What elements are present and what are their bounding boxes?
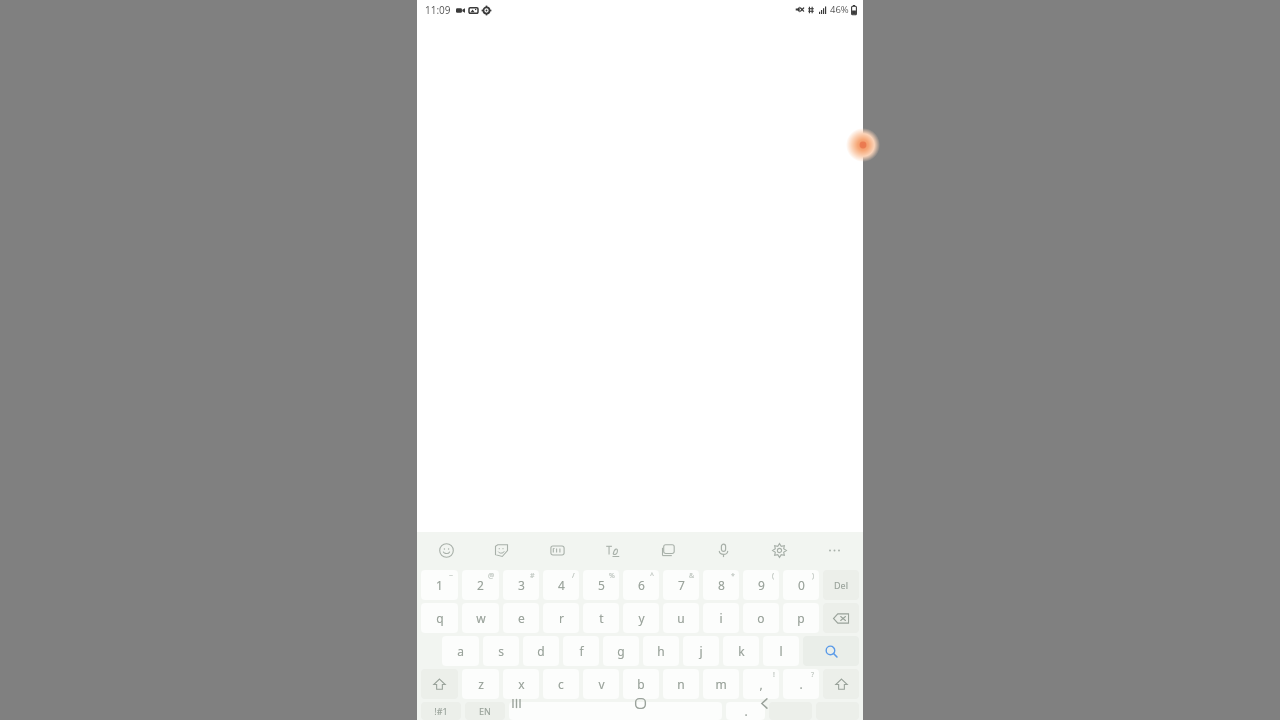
button[interactable]: 4 <box>543 570 579 600</box>
staticText: h <box>657 643 665 659</box>
button[interactable]: EN <box>465 702 505 720</box>
staticText: 46% <box>830 3 849 16</box>
staticText: !#1 <box>434 705 448 717</box>
staticText: . <box>799 676 803 692</box>
staticText: . <box>744 703 748 719</box>
staticText: 2 <box>477 577 484 593</box>
button[interactable]: Del <box>823 570 859 600</box>
staticText: # <box>530 571 535 581</box>
button[interactable]: 0 <box>783 570 819 600</box>
button[interactable]: f <box>563 636 599 666</box>
button[interactable]: p <box>783 603 819 633</box>
button[interactable]: x <box>503 669 539 699</box>
button[interactable]: Shift right <box>823 669 859 699</box>
button[interactable] <box>509 702 722 720</box>
button[interactable]: e <box>503 603 539 633</box>
button[interactable]: . <box>783 669 819 699</box>
staticText: p <box>797 610 805 626</box>
button[interactable]: y <box>623 603 659 633</box>
button[interactable]: d <box>523 636 559 666</box>
staticText: g <box>617 643 625 659</box>
staticText: & <box>689 571 695 581</box>
button[interactable]: g <box>603 636 639 666</box>
button[interactable]: o <box>743 603 779 633</box>
staticText: 4 <box>558 577 565 593</box>
button[interactable]: Clipboard <box>653 535 683 565</box>
staticText: b <box>637 676 645 692</box>
button[interactable]: , <box>743 669 779 699</box>
button[interactable]: 9 <box>743 570 779 600</box>
staticText: 8 <box>718 577 725 593</box>
staticText: r <box>559 610 564 626</box>
button[interactable]: Search <box>803 636 859 666</box>
staticText: 3 <box>518 577 525 593</box>
staticText: t <box>599 610 604 626</box>
staticText: x <box>518 676 525 692</box>
button[interactable]: 2 <box>462 570 499 600</box>
button[interactable]: l <box>763 636 799 666</box>
button[interactable]: Settings <box>764 535 794 565</box>
staticText: 7 <box>678 577 685 593</box>
button[interactable]: 5 <box>583 570 619 600</box>
button[interactable]: w <box>462 603 499 633</box>
staticText: e <box>518 610 525 626</box>
button[interactable]: j <box>683 636 719 666</box>
staticText: m <box>715 676 727 692</box>
button[interactable]: t <box>583 603 619 633</box>
staticText: d <box>537 643 545 659</box>
button[interactable]: a <box>442 636 479 666</box>
staticText: k <box>738 643 745 659</box>
staticText: 9 <box>758 577 765 593</box>
button[interactable]: Stickers <box>486 535 516 565</box>
button[interactable]: 7 <box>663 570 699 600</box>
button[interactable]: Floating bubble <box>846 128 880 162</box>
staticText: ( <box>772 571 775 581</box>
button[interactable]: Back <box>747 694 781 712</box>
button[interactable]: u <box>663 603 699 633</box>
button[interactable]: Home <box>623 694 657 712</box>
staticText: j <box>699 643 703 659</box>
button[interactable]: 6 <box>623 570 659 600</box>
staticText: ) <box>812 571 815 581</box>
button[interactable]: r <box>543 603 579 633</box>
button[interactable]: c <box>543 669 579 699</box>
button[interactable]: s <box>483 636 519 666</box>
button[interactable]: Emoji <box>431 535 461 565</box>
button[interactable]: z <box>462 669 499 699</box>
button[interactable]: v <box>583 669 619 699</box>
button[interactable]: 1 <box>421 570 458 600</box>
button[interactable]: i <box>703 603 739 633</box>
button[interactable]: More options <box>819 535 849 565</box>
staticText: y <box>638 610 645 626</box>
button[interactable]: Recents <box>499 694 533 712</box>
staticText: ! <box>773 670 775 680</box>
button[interactable]: Backspace <box>823 603 859 633</box>
button[interactable]: m <box>703 669 739 699</box>
button[interactable]: . <box>726 702 765 720</box>
button[interactable]: GIF <box>542 535 572 565</box>
button[interactable]: 3 <box>503 570 539 600</box>
staticText: 11:09 <box>425 3 451 17</box>
staticText: f <box>579 643 584 659</box>
button[interactable]: Handwriting <box>597 535 627 565</box>
button[interactable]: !#1 <box>421 702 461 720</box>
staticText: i <box>719 610 723 626</box>
button[interactable]: b <box>623 669 659 699</box>
button[interactable]: n <box>663 669 699 699</box>
staticText: * <box>731 571 735 581</box>
staticText: 0 <box>798 577 805 593</box>
button[interactable]: k <box>723 636 759 666</box>
staticText: s <box>498 643 504 659</box>
staticText: q <box>436 610 444 626</box>
button[interactable]: Shift <box>421 669 458 699</box>
staticText: w <box>476 610 486 626</box>
button[interactable]: Voice input <box>708 535 738 565</box>
staticText: n <box>677 676 685 692</box>
button[interactable]: q <box>421 603 458 633</box>
button[interactable]: 8 <box>703 570 739 600</box>
button[interactable]: h <box>643 636 679 666</box>
staticText: 6 <box>638 577 645 593</box>
staticText: o <box>757 610 765 626</box>
